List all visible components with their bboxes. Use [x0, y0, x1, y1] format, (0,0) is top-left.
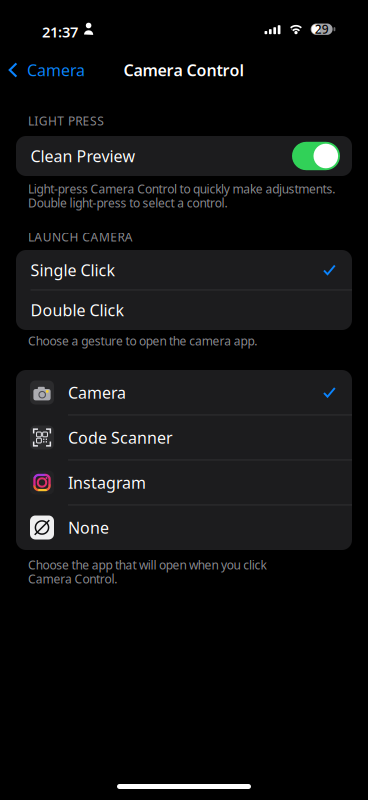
staticText: Double light-press to select a control. — [28, 195, 227, 211]
staticText: Code Scanner — [68, 427, 173, 448]
staticText: Camera — [68, 382, 126, 403]
staticText: Camera — [27, 59, 85, 81]
button[interactable]: Double Click — [16, 290, 352, 330]
staticText: LIGHT PRESS — [28, 113, 104, 129]
staticText: Instagram — [68, 472, 146, 493]
staticText: None — [68, 517, 109, 538]
staticText: Camera Control — [123, 59, 244, 81]
staticText: Camera Control. — [28, 571, 117, 587]
staticText: Clean Preview — [30, 145, 135, 167]
button[interactable]: Instagram — [16, 460, 352, 505]
button[interactable]: Code Scanner — [16, 415, 352, 460]
staticText: 29 — [315, 21, 329, 37]
button[interactable]: Camera — [16, 370, 352, 415]
button[interactable]: Camera — [0, 49, 95, 91]
button[interactable]: None — [16, 505, 352, 550]
staticText: LAUNCH CAMERA — [28, 229, 133, 245]
staticText: Double Click — [30, 299, 124, 321]
button[interactable]: Clean Preview — [16, 136, 352, 176]
staticText: 21:37 — [42, 22, 78, 41]
staticText: Single Click — [30, 259, 115, 281]
staticText: Light-press Camera Control to quickly ma… — [28, 181, 335, 197]
staticText: Choose the app that will open when you c… — [28, 557, 266, 573]
staticText: Choose a gesture to open the camera app. — [28, 333, 257, 349]
button[interactable]: Single Click — [16, 250, 352, 290]
